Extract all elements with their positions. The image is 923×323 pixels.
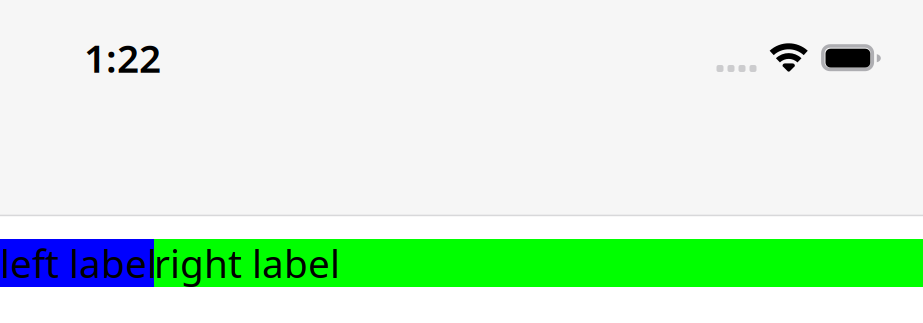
staticText: right label xyxy=(154,237,340,289)
staticText: left label xyxy=(0,237,157,289)
staticText: 1:22 xyxy=(84,32,161,83)
